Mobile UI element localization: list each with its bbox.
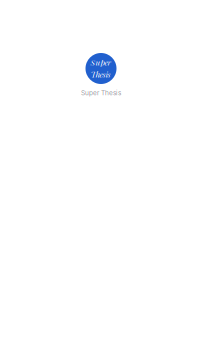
staticText: Super bbox=[90, 57, 110, 67]
button[interactable]: Super Thesis bbox=[81, 53, 121, 97]
staticText: Super Thesis bbox=[81, 89, 121, 97]
staticText: Thesis bbox=[90, 69, 110, 79]
